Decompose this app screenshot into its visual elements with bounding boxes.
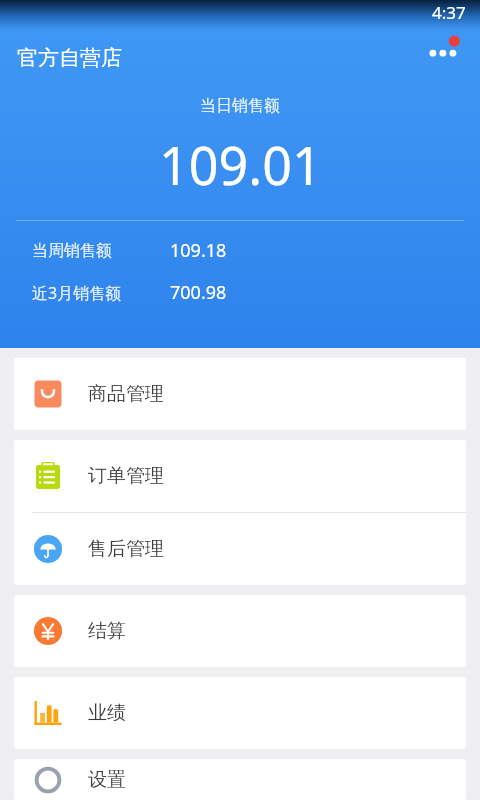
staticText: 业绩 (88, 701, 126, 725)
staticText: 4:37 (432, 1, 466, 24)
staticText: 700.98 (170, 280, 227, 305)
button[interactable]: 订单管理 (14, 440, 466, 512)
staticText: 结算 (88, 619, 126, 643)
staticText: 当周销售额 (32, 241, 112, 261)
staticText: 近3月销售额 (32, 282, 122, 304)
staticText: 109.01 (159, 129, 322, 200)
button[interactable]: 售后管理 (14, 513, 466, 585)
staticText: 售后管理 (88, 537, 164, 561)
staticText: 109.18 (170, 238, 227, 263)
button[interactable]: 设置 (14, 759, 466, 800)
button[interactable]: More options (420, 36, 464, 62)
staticText: 设置 (88, 768, 126, 792)
staticText: 订单管理 (88, 464, 164, 488)
button[interactable]: 结算 (14, 595, 466, 667)
staticText: 当日销售额 (200, 96, 280, 116)
staticText: 商品管理 (88, 382, 164, 406)
staticText: 官方自营店 (17, 45, 122, 71)
button[interactable]: 业绩 (14, 677, 466, 749)
button[interactable]: 商品管理 (14, 358, 466, 430)
